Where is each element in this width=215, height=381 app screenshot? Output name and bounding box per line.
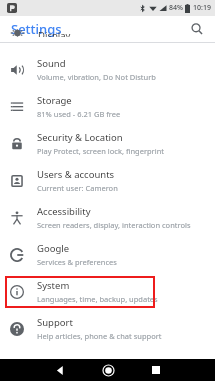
button[interactable]: Google: [0, 236, 215, 273]
staticText: Current user: Cameron: [37, 183, 118, 193]
staticText: Display: [38, 29, 71, 37]
staticText: System: [37, 279, 70, 292]
button[interactable]: Users & accounts: [0, 162, 215, 199]
staticText: 10:19: [193, 3, 211, 13]
staticText: Help articles, phone & chat support: [37, 331, 162, 341]
button[interactable]: Accessibility: [0, 199, 215, 236]
staticText: Accessibility: [37, 205, 91, 218]
staticText: Languages, time, backup, updates: [37, 294, 158, 304]
button[interactable]: Search: [187, 19, 207, 39]
staticText: Security & Location: [37, 131, 123, 144]
staticText: Screen readers, display, interaction con…: [37, 220, 191, 230]
staticText: Support: [37, 316, 73, 329]
staticText: Play Protect, screen lock, fingerprint: [37, 146, 164, 156]
staticText: 84%: [169, 3, 183, 13]
button[interactable]: System: [0, 273, 215, 310]
button[interactable]: Storage: [0, 88, 215, 125]
staticText: Services & preferences: [37, 257, 117, 267]
staticText: Volume, vibration, Do Not Disturb: [37, 72, 156, 82]
staticText: Storage: [37, 94, 72, 107]
staticText: Users & accounts: [37, 168, 115, 181]
staticText: Settings: [11, 20, 62, 38]
button[interactable]: Home: [98, 360, 118, 380]
button[interactable]: Support: [0, 310, 215, 347]
button[interactable]: Back: [50, 360, 70, 380]
staticText: Google: [37, 242, 70, 255]
button[interactable]: Recent apps: [146, 360, 166, 380]
button[interactable]: Security & Location: [0, 125, 215, 162]
staticText: 81% used - 6.21 GB free: [37, 109, 121, 119]
button[interactable]: Sound: [0, 51, 215, 88]
staticText: Sound: [37, 57, 66, 70]
